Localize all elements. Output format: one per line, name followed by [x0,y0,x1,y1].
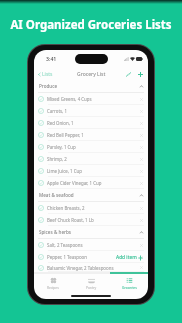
staticText: Shrimp, 2 [47,156,139,162]
button[interactable]: Salt, 2 Teaspoons [38,239,144,251]
button[interactable]: Balsamic Vinegar, 2 Tablespoons [38,263,144,272]
staticText: Apple Cider Vinegar, 1 Cup [47,180,139,186]
staticText: Pantry [86,285,97,289]
button[interactable]: Chicken Breasts, 2 [38,202,144,214]
staticText: Grocery List [77,71,106,78]
staticText: Red Onion, 1 [47,120,139,126]
staticText: Beef Chuck Roast, 1 Lb [47,217,139,223]
button[interactable]: Add item [116,254,143,261]
staticText: Lime Juice, 1 Cup [47,168,139,174]
staticText: Pepper, 1 Teaspoon [47,254,139,260]
staticText: Parsley, 1 Cup [47,144,139,150]
button[interactable]: Lists [37,71,53,78]
button[interactable]: Mixed Greens, 4 Cups [38,93,144,105]
button[interactable]: Lime Juice, 1 Cup [38,165,144,177]
staticText: 3:41 [46,55,57,62]
staticText: Add item [116,254,137,261]
button[interactable]: Share list [125,71,132,78]
button[interactable]: Recipes [34,274,72,292]
staticText: Carrots, 1 [47,108,139,114]
staticText: Meat & seafood [39,192,139,198]
staticText: AI Organized Groceries Lists [0,17,182,33]
button[interactable]: Groceries [110,274,148,292]
button[interactable]: Shrimp, 2 [38,153,144,165]
button[interactable]: Produce [38,80,144,92]
button[interactable]: Add item [137,71,144,78]
staticText: Groceries [122,285,137,289]
staticText: Mixed Greens, 4 Cups [47,96,139,102]
staticText: Spices & herbs [39,229,139,235]
staticText: Chicken Breasts, 2 [47,205,139,211]
staticText: Recipes [47,285,59,289]
staticText: Lists [42,71,53,78]
button[interactable]: Pantry [72,274,110,292]
button[interactable]: Carrots, 1 [38,105,144,117]
staticText: Salt, 2 Teaspoons [47,242,139,248]
button[interactable]: Meat & seafood [38,189,144,201]
staticText: Balsamic Vinegar, 2 Tablespoons [47,265,139,271]
button[interactable]: Parsley, 1 Cup [38,141,144,153]
button[interactable]: Red Onion, 1 [38,117,144,129]
button[interactable]: Red Bell Pepper, 1 [38,129,144,141]
button[interactable]: Beef Chuck Roast, 1 Lb [38,214,144,226]
staticText: Red Bell Pepper, 1 [47,132,139,138]
button[interactable]: Pepper, 1 Teaspoon [38,251,144,263]
button[interactable]: Spices & herbs [38,226,144,238]
staticText: Produce [39,83,139,89]
button[interactable]: Apple Cider Vinegar, 1 Cup [38,177,144,189]
